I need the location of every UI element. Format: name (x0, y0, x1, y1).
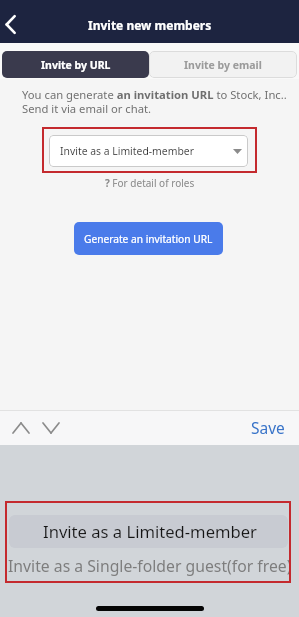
staticText: Invite new members (88, 17, 212, 33)
staticText: Invite as a Single-folder guest(for free… (8, 555, 292, 576)
button[interactable]: Invite by email (149, 51, 297, 78)
staticText: Generate an invitation URL (84, 232, 213, 246)
button[interactable]: Back (0, 5, 26, 44)
button[interactable]: Save (251, 417, 285, 438)
staticText: You can generate an invitation URL to St… (22, 87, 287, 116)
button[interactable]: Previous field (9, 413, 33, 443)
button[interactable]: Invite as a Limited-member (49, 135, 248, 167)
staticText: Invite by email (184, 58, 262, 72)
button[interactable]: Next field (39, 413, 63, 443)
staticText: Invite as a Limited-member (43, 520, 257, 543)
button[interactable]: Generate an invitation URL (74, 222, 223, 255)
staticText: ? For detail of roles (105, 176, 195, 190)
button[interactable]: Invite as a Single-folder guest(for free… (0, 549, 299, 581)
staticText: Save (251, 417, 285, 438)
button[interactable]: ? For detail of roles (105, 176, 195, 190)
button[interactable]: Invite by URL (2, 51, 149, 78)
staticText: Invite by URL (41, 58, 111, 72)
staticText: Invite as a Limited-member (60, 144, 194, 158)
